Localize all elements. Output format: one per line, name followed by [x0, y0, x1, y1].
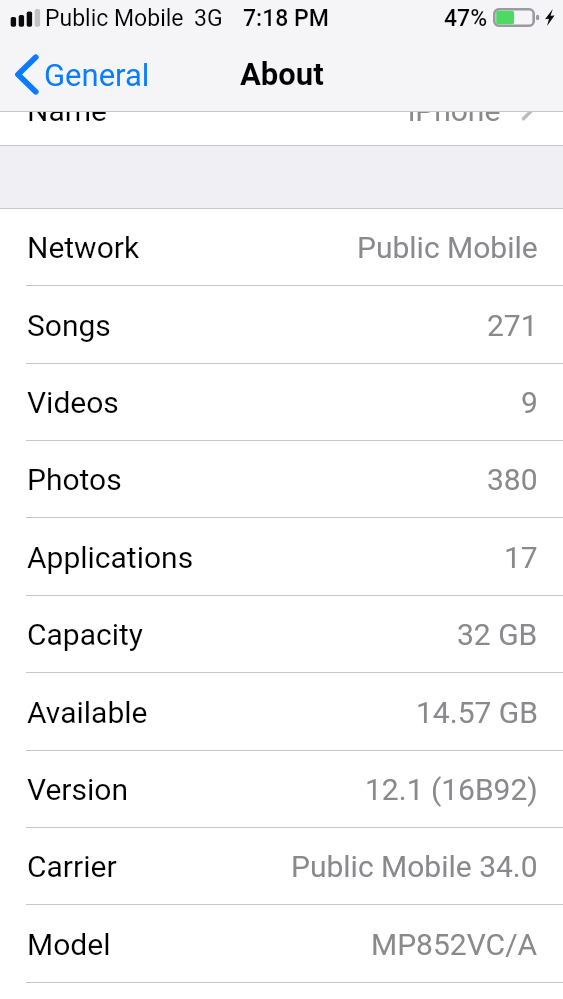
staticText: Public Mobile [357, 230, 538, 265]
staticText: 271 [487, 308, 538, 343]
staticText: Model [27, 927, 111, 962]
staticText: Carrier [27, 849, 117, 884]
staticText: 9 [521, 385, 538, 420]
button[interactable]: Songs [0, 286, 563, 364]
button[interactable]: Applications [0, 518, 563, 596]
button[interactable]: Carrier [0, 828, 563, 905]
staticText: 3G [194, 5, 223, 32]
button[interactable]: Network [0, 209, 563, 286]
staticText: Public Mobile 34.0 [291, 849, 538, 884]
staticText: Songs [27, 308, 111, 343]
staticText: Capacity [27, 617, 144, 652]
staticText: Applications [27, 540, 194, 575]
button[interactable]: Available [0, 673, 563, 751]
staticText: Available [27, 695, 148, 730]
staticText: Name [27, 93, 107, 128]
staticText: Network [27, 230, 140, 265]
staticText: 47% [444, 5, 488, 32]
staticText: 380 [487, 462, 538, 497]
staticText: 7:18 PM [243, 5, 329, 32]
staticText: 12.1 (16B92) [365, 772, 538, 807]
button[interactable]: Model [0, 905, 563, 983]
button[interactable]: Version [0, 751, 563, 828]
staticText: About [240, 56, 324, 92]
button[interactable]: Back to General [9, 46, 156, 103]
button[interactable]: Name [0, 0, 563, 146]
button[interactable]: Videos [0, 364, 563, 441]
staticText: 14.57 GB [416, 695, 538, 730]
staticText: Photos [27, 462, 122, 497]
staticText: Version [27, 772, 128, 807]
staticText: 32 GB [457, 617, 538, 652]
staticText: iPhone [408, 93, 501, 128]
button[interactable]: Photos [0, 441, 563, 518]
staticText: 17 [504, 540, 538, 575]
staticText: MP852VC/A [371, 927, 538, 962]
staticText: Public Mobile [45, 5, 184, 32]
staticText: General [44, 57, 150, 93]
button[interactable]: Capacity [0, 596, 563, 673]
staticText: Videos [27, 385, 119, 420]
